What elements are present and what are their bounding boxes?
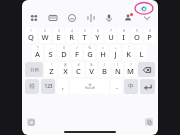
staticText: 2 <box>44 29 46 33</box>
button[interactable]: ) <box>112 62 123 77</box>
button[interactable]: % <box>84 45 95 60</box>
button[interactable]: - <box>45 45 56 60</box>
button[interactable]: Adjust <box>85 12 96 23</box>
staticText: G <box>87 49 93 59</box>
staticText: V <box>89 66 94 76</box>
staticText: D <box>61 49 67 59</box>
staticText: O <box>134 32 140 42</box>
staticText: Z <box>49 66 54 76</box>
staticText: T <box>82 32 87 42</box>
button[interactable]: * <box>32 45 43 60</box>
staticText: U <box>108 32 114 42</box>
button[interactable]: Keyboard layout <box>47 12 58 23</box>
button[interactable]: Enter <box>140 79 155 94</box>
staticText: X <box>63 66 68 76</box>
staticText: * <box>37 46 39 50</box>
staticText: / <box>76 46 78 50</box>
button[interactable]: 0 <box>58 45 69 60</box>
staticText: 4 <box>71 29 73 33</box>
staticText: R <box>69 32 74 42</box>
staticText: 0 <box>149 29 151 33</box>
button[interactable]: Apps <box>28 12 39 23</box>
staticText: & <box>90 63 93 67</box>
staticText: 3 <box>58 29 60 33</box>
button[interactable]: # <box>73 62 84 77</box>
staticText: # <box>77 63 80 67</box>
staticText: P <box>147 32 152 42</box>
staticText: N <box>115 66 121 76</box>
button[interactable]: 7 <box>105 28 116 43</box>
staticText: : <box>141 46 142 50</box>
staticText: " <box>128 46 130 50</box>
staticText: L <box>139 49 144 59</box>
button[interactable]: / <box>71 45 82 60</box>
staticText: 123 <box>44 83 53 90</box>
staticText: F <box>75 49 79 59</box>
button[interactable]: 中 <box>124 79 138 94</box>
button[interactable]: Space <box>70 79 109 94</box>
button[interactable]: . <box>111 79 122 94</box>
staticText: + <box>115 46 117 50</box>
staticText: ! <box>51 63 52 67</box>
button[interactable]: Emoji <box>66 12 77 23</box>
staticText: = <box>102 46 104 50</box>
staticText: ? <box>130 63 132 67</box>
staticText: 1 <box>30 29 32 33</box>
button[interactable]: @ <box>59 62 71 77</box>
staticText: 中 <box>128 83 134 90</box>
staticText: W <box>41 32 49 42</box>
button[interactable]: 分词 <box>25 62 43 77</box>
staticText: A <box>35 49 40 59</box>
button[interactable]: Collapse keyboard <box>141 12 152 23</box>
staticText: 9 <box>136 29 138 33</box>
staticText: 8 <box>123 29 125 33</box>
button[interactable]: = <box>97 45 108 60</box>
staticText: Y <box>95 32 100 42</box>
button[interactable]: Clipboard <box>145 118 153 126</box>
button[interactable]: 4 <box>66 28 77 43</box>
staticText: - <box>50 46 52 50</box>
staticText: 符 <box>29 83 35 90</box>
staticText: B <box>102 66 107 76</box>
button[interactable]: Backspace <box>138 62 155 77</box>
button[interactable]: " <box>123 45 134 60</box>
staticText: ) <box>117 63 118 67</box>
button[interactable]: : <box>136 45 147 60</box>
button[interactable]: Translate <box>122 12 133 23</box>
button[interactable]: 0 <box>144 28 155 43</box>
button[interactable]: Keyboard settings <box>27 118 35 126</box>
staticText: % <box>88 46 91 50</box>
button[interactable]: Input method logo <box>140 5 148 13</box>
staticText: S <box>48 49 53 59</box>
button[interactable]: + <box>110 45 121 60</box>
button[interactable]: 2 <box>39 28 51 43</box>
button[interactable]: 123 <box>41 79 55 94</box>
staticText: K <box>126 49 131 59</box>
button[interactable]: 3 <box>53 28 64 43</box>
staticText: 7 <box>110 29 112 33</box>
staticText: M <box>127 66 134 76</box>
button[interactable]: ! <box>45 62 57 77</box>
staticText: . <box>116 82 118 92</box>
button[interactable]: 符 <box>25 79 39 94</box>
button[interactable]: & <box>86 62 97 77</box>
button[interactable]: 8 <box>118 28 129 43</box>
button[interactable]: ? <box>125 62 136 77</box>
button[interactable]: ( <box>99 62 110 77</box>
button[interactable]: 6 <box>92 28 103 43</box>
staticText: , <box>62 82 64 92</box>
button[interactable]: 9 <box>131 28 142 43</box>
staticText: ( <box>104 63 105 67</box>
staticText: @ <box>64 63 67 67</box>
staticText: E <box>56 32 61 42</box>
button[interactable]: 5 <box>79 28 90 43</box>
staticText: C <box>76 66 81 76</box>
staticText: H <box>100 49 106 59</box>
button[interactable]: Voice input <box>103 12 114 23</box>
staticText: 5 <box>84 29 86 33</box>
staticText: I <box>122 32 125 42</box>
button[interactable]: , <box>57 79 68 94</box>
button[interactable]: 1 <box>25 28 37 43</box>
staticText: 6 <box>97 29 99 33</box>
staticText: 0 <box>63 46 65 50</box>
